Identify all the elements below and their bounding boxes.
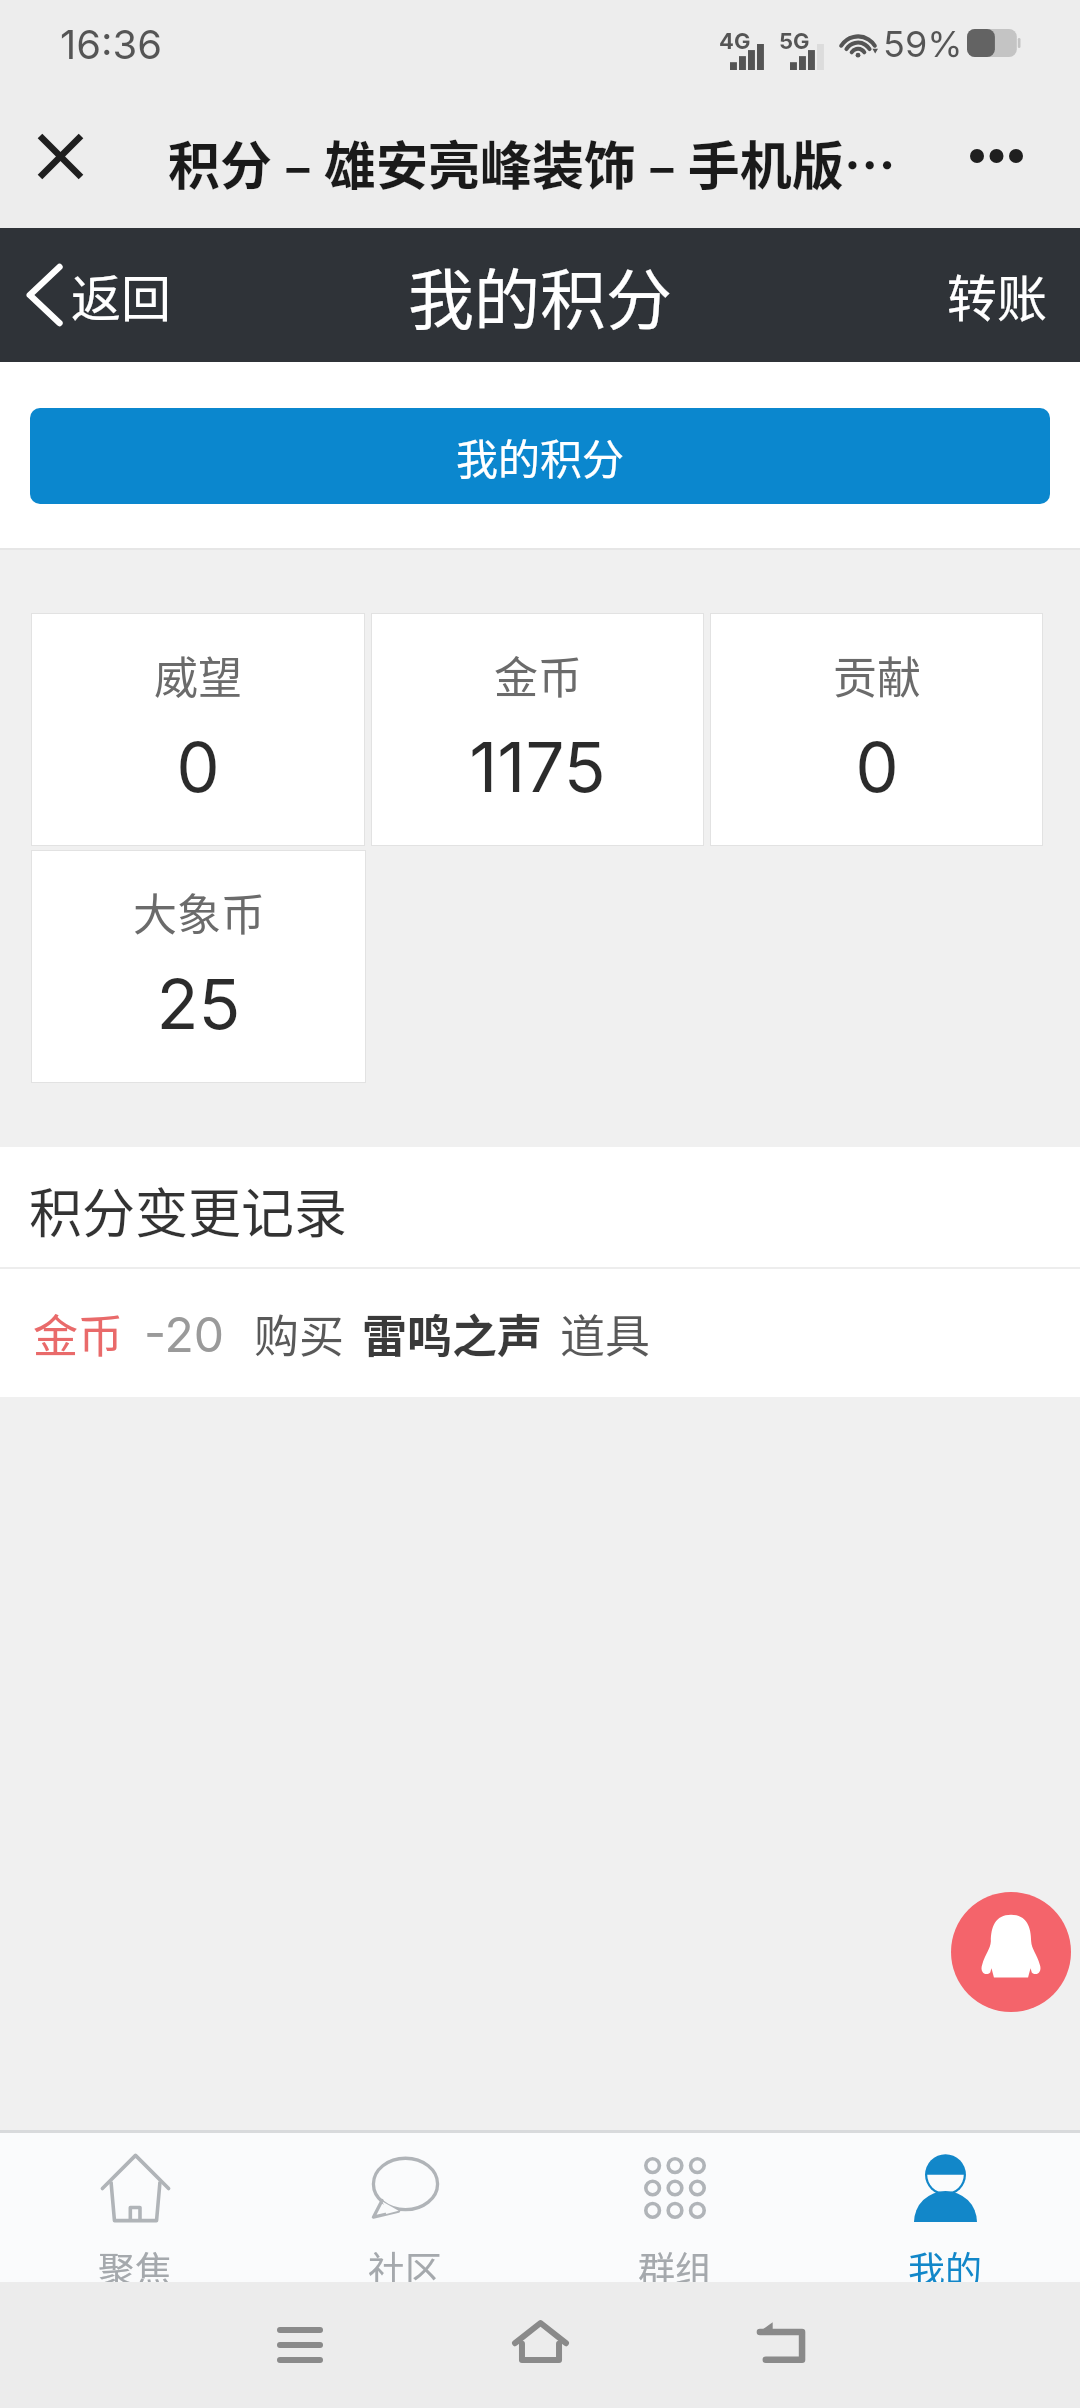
button[interactable]: 聚焦 <box>0 2133 270 2282</box>
button[interactable]: Home <box>495 2296 585 2386</box>
staticText: 我的积分 <box>408 247 672 343</box>
staticText: 社区 <box>368 2241 442 2295</box>
staticText: -20 <box>144 1305 225 1363</box>
staticText: 贡献 <box>833 643 921 707</box>
button[interactable]: 社区 <box>270 2133 540 2282</box>
staticText: 购买 <box>254 1301 345 1366</box>
button[interactable]: 威望 <box>32 614 364 845</box>
staticText: 群组 <box>638 2241 712 2295</box>
button[interactable]: 群组 <box>540 2133 810 2282</box>
staticText: 大象币 <box>133 880 265 944</box>
staticText: 4G <box>719 28 751 55</box>
button[interactable]: 大象币 <box>32 851 365 1082</box>
button[interactable]: More options <box>956 116 1036 196</box>
staticText: 雷鸣之声 <box>362 1301 543 1366</box>
button[interactable]: 金币 <box>372 614 703 845</box>
button[interactable]: Back <box>735 2297 825 2387</box>
staticText: 我的 <box>908 2241 982 2295</box>
staticText: 0 <box>176 725 220 808</box>
staticText: 聚焦 <box>98 2241 172 2295</box>
staticText: 积分 – 雄安亮峰装饰 – 手机版… <box>168 125 896 200</box>
button[interactable]: 转账 <box>947 259 1047 331</box>
staticText: 25 <box>156 962 241 1045</box>
staticText: 返回 <box>71 259 171 331</box>
staticText: 我的积分 <box>456 426 625 487</box>
button[interactable]: 我的 <box>810 2133 1080 2282</box>
button[interactable]: 返回 <box>26 259 171 331</box>
button[interactable]: QQ chat <box>951 1892 1071 2012</box>
button[interactable]: 我的积分 <box>30 408 1050 504</box>
staticText: 道具 <box>560 1301 651 1366</box>
button[interactable]: Close <box>20 116 100 196</box>
staticText: 5G <box>779 28 810 55</box>
staticText: 16:36 <box>60 20 163 68</box>
button[interactable]: 金币 <box>0 1269 1080 1397</box>
staticText: 0 <box>855 725 899 808</box>
staticText: 积分变更记录 <box>29 1172 347 1249</box>
button[interactable]: Recent apps <box>255 2300 345 2390</box>
staticText: 威望 <box>154 643 242 707</box>
staticText: 金币 <box>33 1301 124 1366</box>
staticText: 1175 <box>469 725 606 808</box>
staticText: 金币 <box>494 643 582 707</box>
button[interactable]: 贡献 <box>711 614 1042 845</box>
staticText: 59% <box>883 22 963 66</box>
